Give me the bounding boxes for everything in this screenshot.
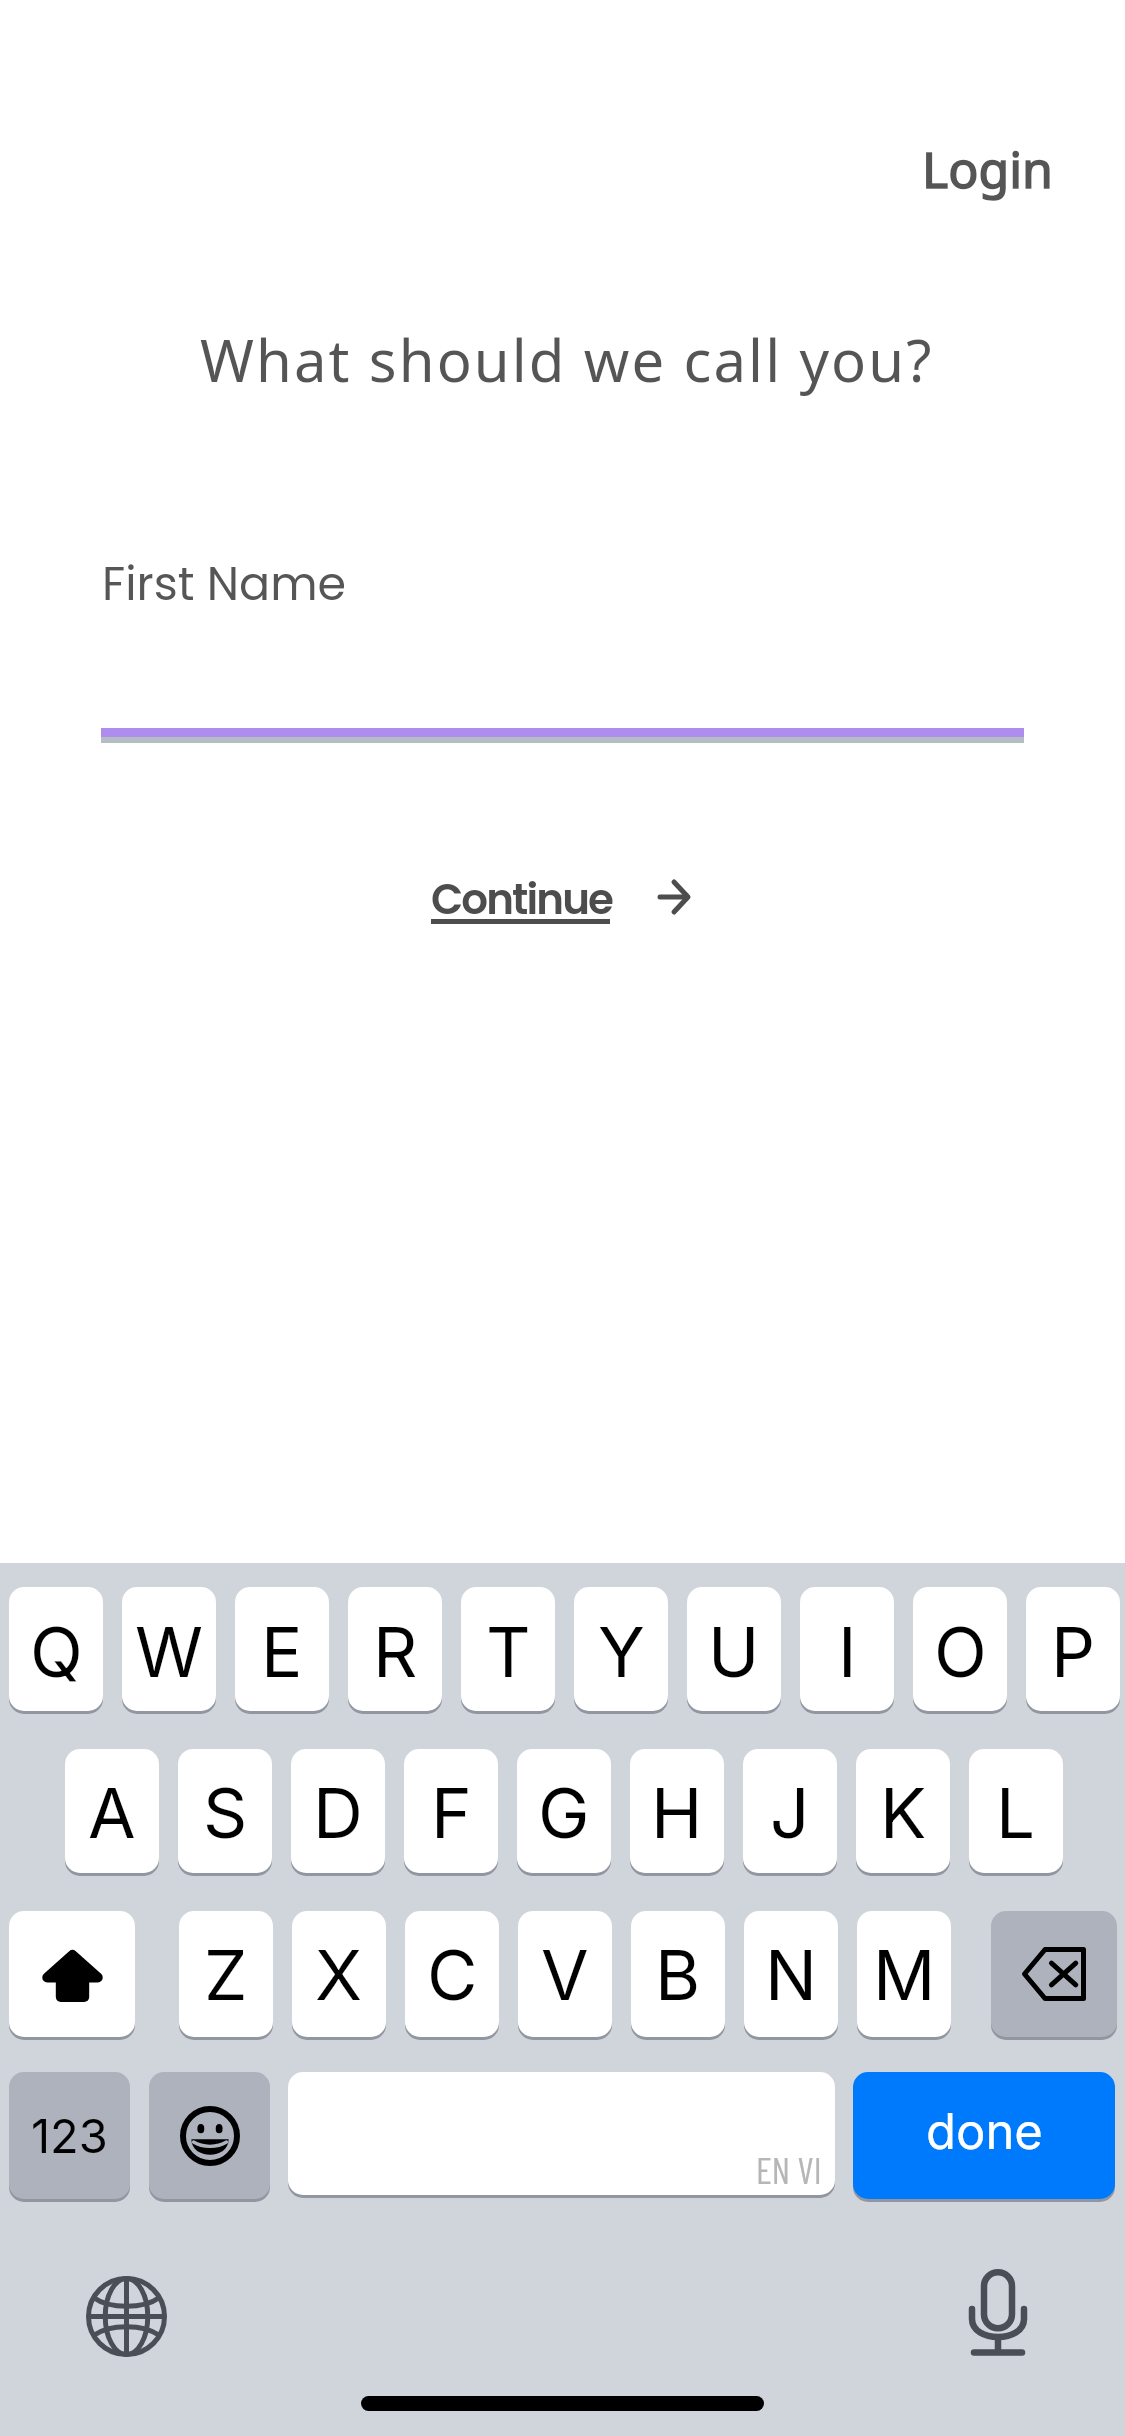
button[interactable]: C <box>405 1911 499 2037</box>
staticText: Continue <box>431 870 613 929</box>
staticText: F <box>431 1771 472 1854</box>
button[interactable]: H <box>630 1749 724 1873</box>
staticText: First Name <box>102 552 347 616</box>
staticText: R <box>373 1610 418 1693</box>
button[interactable]: V <box>518 1911 612 2037</box>
staticText: Login <box>922 135 1053 203</box>
staticText: H <box>651 1771 703 1854</box>
staticText: N <box>765 1933 817 2016</box>
button[interactable]: I <box>800 1587 894 1711</box>
button[interactable]: D <box>291 1749 385 1873</box>
button[interactable]: done <box>853 2072 1115 2199</box>
staticText: J <box>770 1771 810 1854</box>
staticText: Y <box>598 1610 645 1693</box>
staticText: A <box>88 1771 136 1854</box>
staticText: What should we call you? <box>200 320 934 399</box>
staticText: X <box>315 1933 363 2016</box>
staticText: T <box>486 1610 531 1693</box>
button[interactable]: U <box>687 1587 781 1711</box>
button[interactable]: L <box>969 1749 1063 1873</box>
staticText: D <box>313 1771 363 1854</box>
button[interactable]: N <box>744 1911 838 2037</box>
button[interactable]: Y <box>574 1587 668 1711</box>
staticText: EN VI <box>756 2147 822 2191</box>
staticText: W <box>135 1610 203 1693</box>
button[interactable]: X <box>292 1911 386 2037</box>
staticText: P <box>1051 1610 1096 1693</box>
button[interactable]: B <box>631 1911 725 2037</box>
button[interactable]: T <box>461 1587 555 1711</box>
button[interactable]: Continue <box>413 856 708 943</box>
button[interactable]: Emoji <box>149 2072 270 2199</box>
button[interactable]: J <box>743 1749 837 1873</box>
button[interactable]: P <box>1026 1587 1120 1711</box>
staticText: B <box>655 1933 701 2016</box>
button[interactable]: F <box>404 1749 498 1873</box>
button[interactable]: W <box>122 1587 216 1711</box>
button[interactable]: Z <box>179 1911 273 2037</box>
staticText: G <box>538 1771 590 1854</box>
button[interactable]: M <box>857 1911 951 2037</box>
button[interactable]: Space <box>288 2072 835 2195</box>
button[interactable]: Login <box>894 109 1081 229</box>
staticText: C <box>427 1933 478 2016</box>
staticText: I <box>838 1610 857 1693</box>
button[interactable]: Backspace <box>991 1911 1117 2037</box>
staticText: U <box>708 1610 760 1693</box>
button[interactable]: S <box>178 1749 272 1873</box>
staticText: K <box>880 1771 927 1854</box>
staticText: S <box>203 1771 248 1854</box>
button[interactable]: K <box>856 1749 950 1873</box>
staticText: O <box>934 1610 987 1693</box>
staticText: Q <box>30 1610 83 1693</box>
staticText: Z <box>204 1933 248 2016</box>
button[interactable]: Voice input <box>938 2252 1058 2372</box>
button[interactable]: Shift <box>9 1911 135 2037</box>
button[interactable]: A <box>65 1749 159 1873</box>
staticText: done <box>926 2102 1043 2161</box>
button[interactable]: Change keyboard language <box>66 2256 186 2376</box>
staticText: E <box>261 1610 303 1693</box>
button[interactable]: 123 <box>9 2072 130 2199</box>
button[interactable]: R <box>348 1587 442 1711</box>
staticText: L <box>996 1771 1036 1854</box>
staticText: V <box>541 1933 589 2016</box>
button[interactable]: E <box>235 1587 329 1711</box>
staticText: 123 <box>31 2107 108 2164</box>
staticText: M <box>873 1933 936 2016</box>
button[interactable]: O <box>913 1587 1007 1711</box>
button[interactable]: Q <box>9 1587 103 1711</box>
button[interactable]: G <box>517 1749 611 1873</box>
